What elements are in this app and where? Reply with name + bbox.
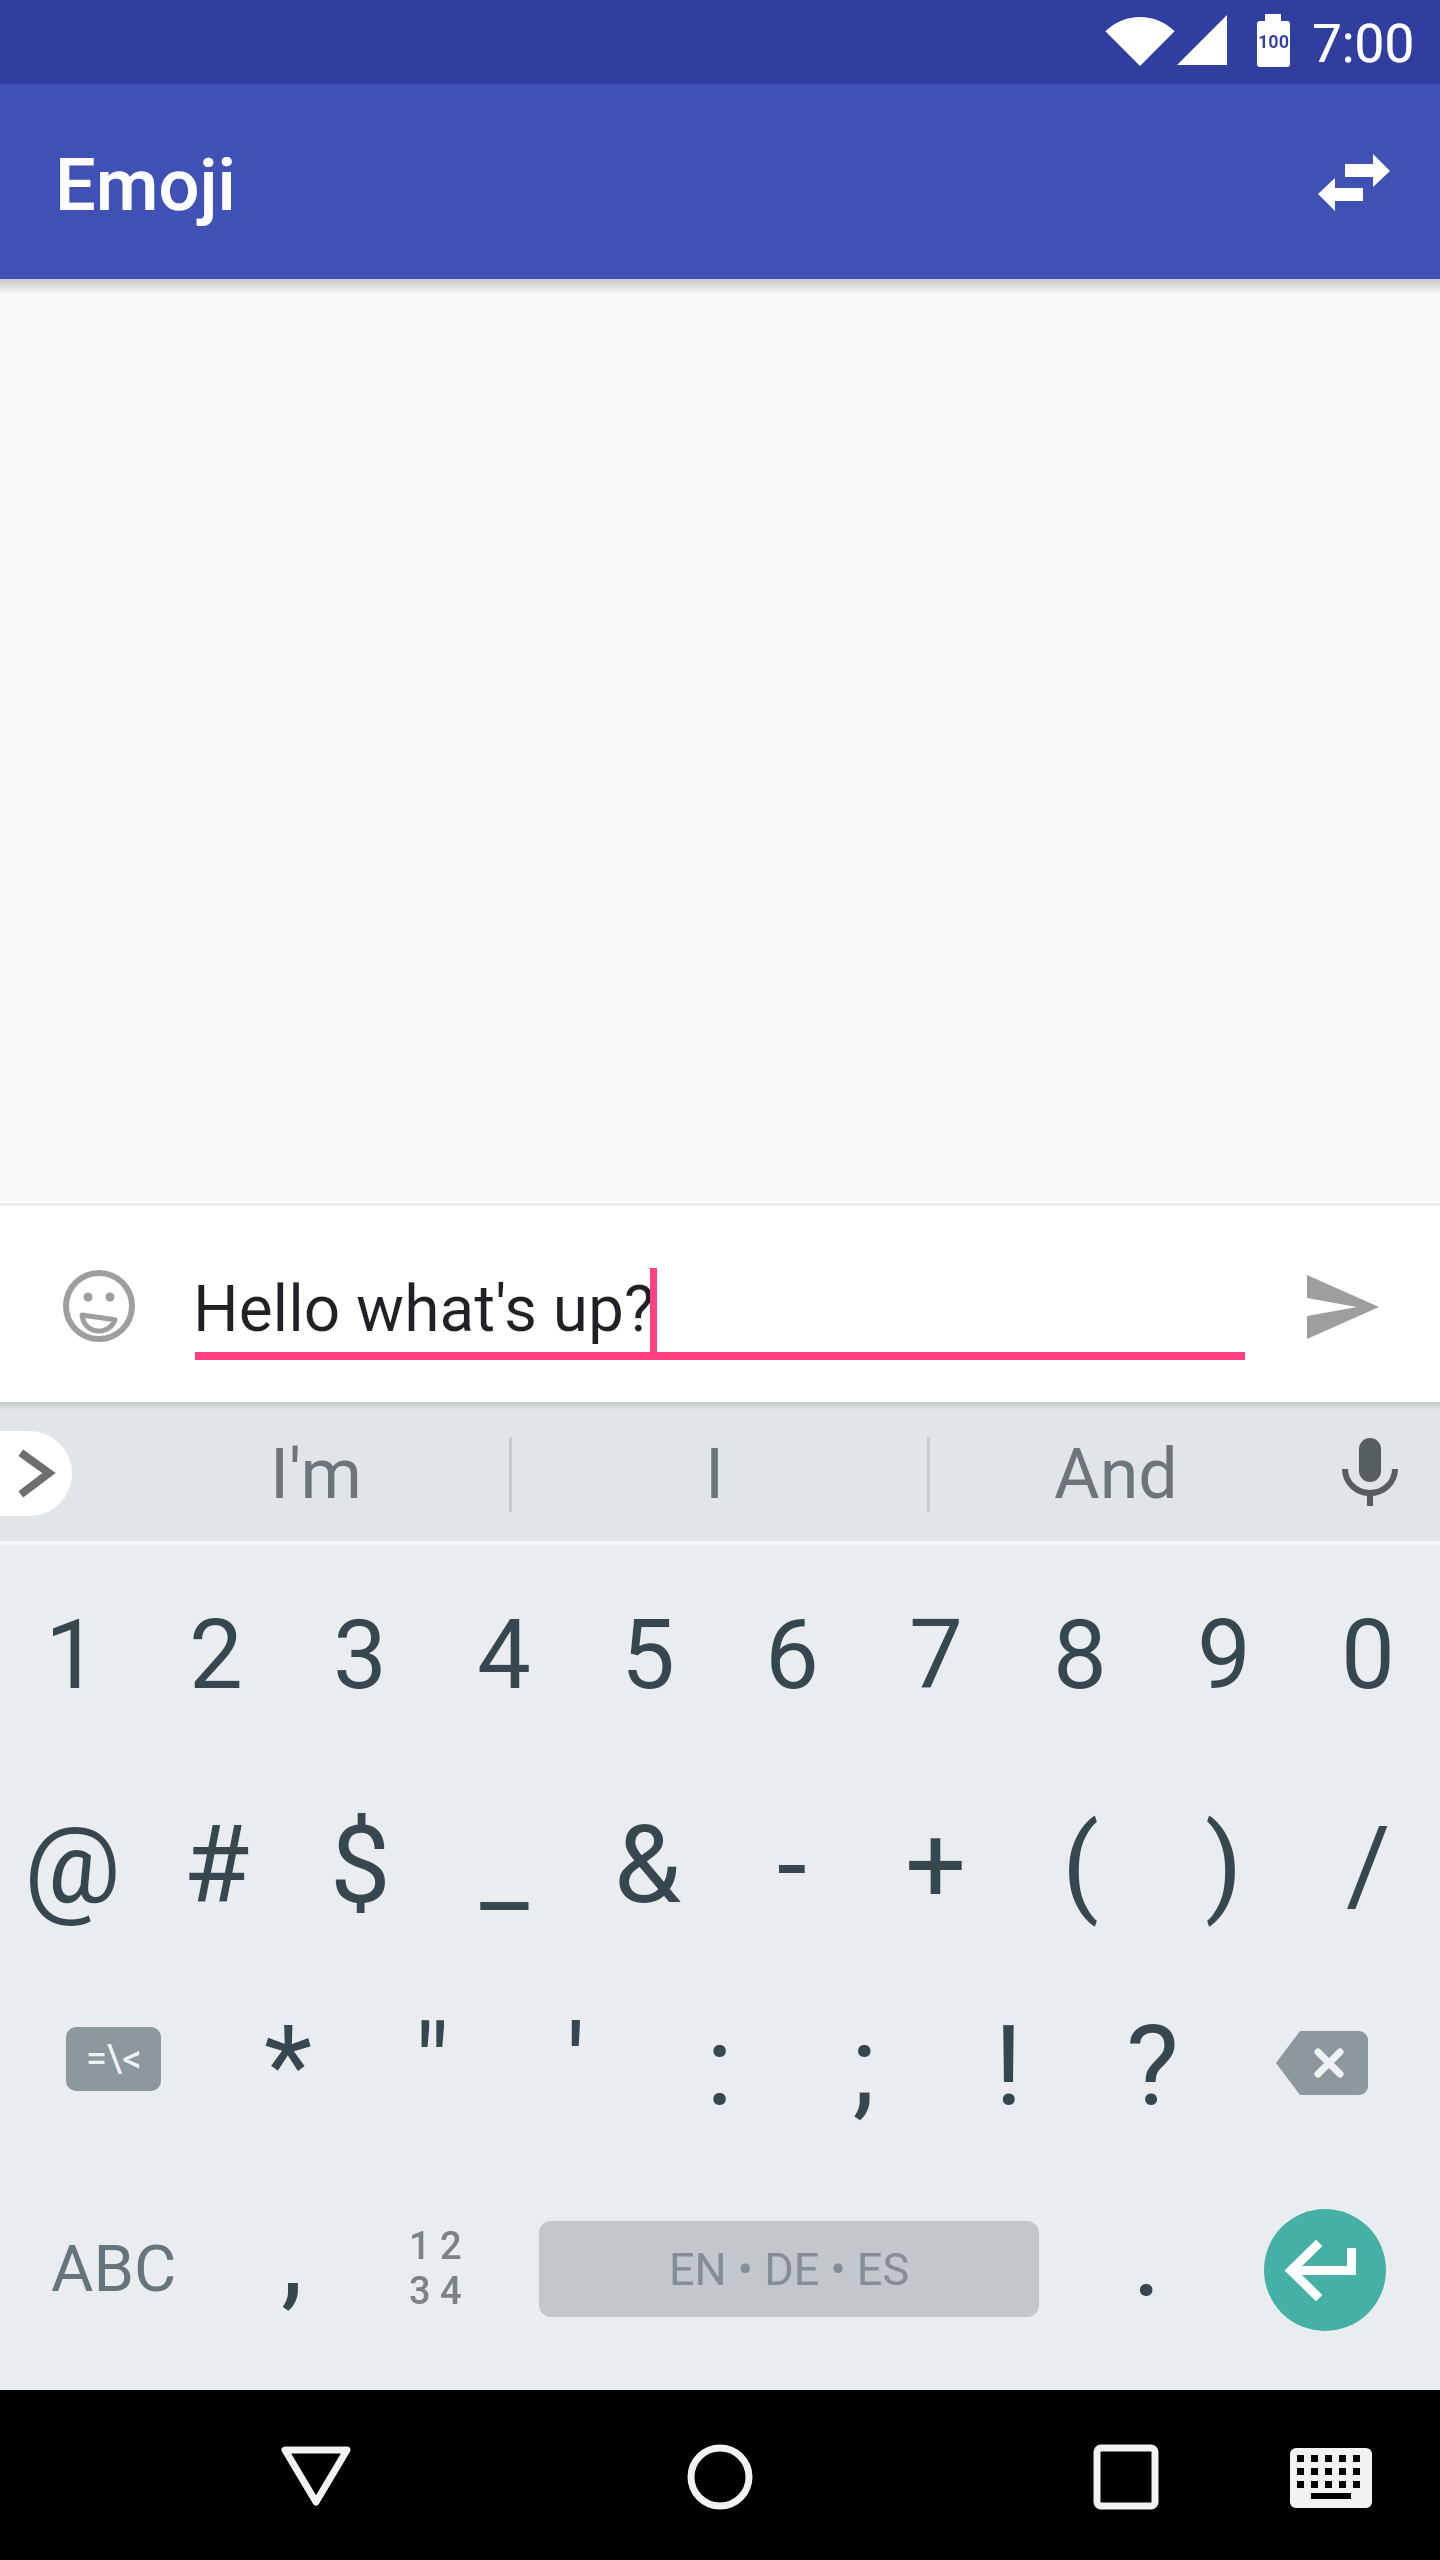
button[interactable]: ; <box>794 1968 934 2163</box>
button[interactable]: ? <box>1082 1968 1222 2163</box>
staticText: 1 <box>45 1599 99 1712</box>
staticText: , <box>281 2191 304 2322</box>
button[interactable]: And <box>1016 1402 1216 1545</box>
button[interactable] <box>480 2390 960 2560</box>
button[interactable]: , <box>222 2163 362 2390</box>
staticText: & <box>614 1802 682 1929</box>
staticText: Emoji <box>55 143 236 227</box>
button[interactable]: $ <box>288 1763 432 1968</box>
button[interactable] <box>0 2390 480 2560</box>
button[interactable]: 4 <box>432 1548 576 1763</box>
staticText: ; <box>852 2000 876 2131</box>
staticText: . <box>1132 2191 1162 2322</box>
staticText: 3 4 <box>409 2269 462 2314</box>
button[interactable]: & <box>576 1763 720 1968</box>
staticText: - <box>777 1802 807 1929</box>
button[interactable]: 0 <box>1296 1548 1440 1763</box>
button[interactable] <box>1300 1259 1390 1349</box>
staticText: ( <box>1062 1802 1099 1929</box>
button[interactable]: 9 <box>1152 1548 1296 1763</box>
staticText: # <box>183 1802 250 1929</box>
staticText: " <box>414 2000 450 2131</box>
button[interactable]: # <box>144 1763 288 1968</box>
staticText: ' <box>566 2000 586 2131</box>
button[interactable]: 5 <box>576 1548 720 1763</box>
button[interactable]: 1 2 <box>365 2163 505 2390</box>
button[interactable]: ! <box>938 1968 1078 2163</box>
button[interactable]: I'm <box>216 1402 416 1545</box>
staticText: 100 <box>1257 31 1290 52</box>
button[interactable] <box>1264 2209 1386 2331</box>
button[interactable]: : <box>650 1968 790 2163</box>
staticText: 6 <box>765 1599 819 1712</box>
button[interactable] <box>0 1431 72 1516</box>
staticText: + <box>905 1802 967 1929</box>
staticText: / <box>1346 1802 1391 1929</box>
button[interactable]: . <box>1077 2163 1217 2390</box>
staticText: @ <box>24 1802 121 1929</box>
staticText: $ <box>330 1802 391 1929</box>
staticText: 3 <box>333 1599 387 1712</box>
button[interactable]: EN • DE • ES <box>539 2221 1039 2317</box>
button[interactable] <box>1274 2030 1370 2096</box>
button[interactable]: 8 <box>1008 1548 1152 1763</box>
button[interactable] <box>58 1265 140 1347</box>
button[interactable]: + <box>864 1763 1008 1968</box>
button[interactable]: 7 <box>864 1548 1008 1763</box>
staticText: 7 <box>909 1599 963 1712</box>
staticText: 0 <box>1341 1599 1395 1712</box>
button[interactable] <box>1330 1432 1410 1518</box>
staticText: 5 <box>621 1599 675 1712</box>
staticText: EN • DE • ES <box>669 2243 910 2296</box>
button[interactable]: " <box>362 1968 502 2163</box>
button[interactable]: 3 <box>288 1548 432 1763</box>
staticText: 7:00 <box>1312 13 1415 75</box>
button[interactable]: 2 <box>144 1548 288 1763</box>
staticText: Hello what's up? <box>193 1272 655 1347</box>
button[interactable] <box>1306 134 1402 230</box>
staticText: =\< <box>86 2037 142 2082</box>
staticText: ) <box>1205 1802 1243 1929</box>
staticText: * <box>264 2000 313 2131</box>
staticText: ABC <box>51 2231 177 2307</box>
button[interactable]: ) <box>1152 1763 1296 1968</box>
button[interactable]: / <box>1296 1763 1440 1968</box>
button[interactable] <box>960 2390 1440 2560</box>
staticText: _ <box>480 1802 529 1929</box>
staticText: ? <box>1126 2000 1179 2131</box>
button[interactable]: - <box>720 1763 864 1968</box>
button[interactable]: ABC <box>34 2163 194 2390</box>
staticText: And <box>1054 1433 1178 1515</box>
staticText: 1 2 <box>409 2224 462 2269</box>
staticText: 4 <box>477 1599 531 1712</box>
button[interactable]: _ <box>432 1763 576 1968</box>
button[interactable]: =\< <box>66 2027 161 2091</box>
button[interactable]: ( <box>1008 1763 1152 1968</box>
button[interactable]: 1 <box>0 1548 144 1763</box>
staticText: 8 <box>1053 1599 1107 1712</box>
button[interactable]: * <box>218 1968 358 2163</box>
button[interactable]: 6 <box>720 1548 864 1763</box>
staticText: : <box>706 2000 734 2131</box>
staticText: 9 <box>1197 1599 1251 1712</box>
staticText: I <box>705 1433 725 1515</box>
button[interactable]: I <box>615 1402 815 1545</box>
button[interactable]: @ <box>0 1763 144 1968</box>
staticText: I'm <box>270 1433 362 1515</box>
button[interactable]: ' <box>506 1968 646 2163</box>
staticText: ! <box>994 2000 1023 2131</box>
staticText: 2 <box>189 1599 243 1712</box>
